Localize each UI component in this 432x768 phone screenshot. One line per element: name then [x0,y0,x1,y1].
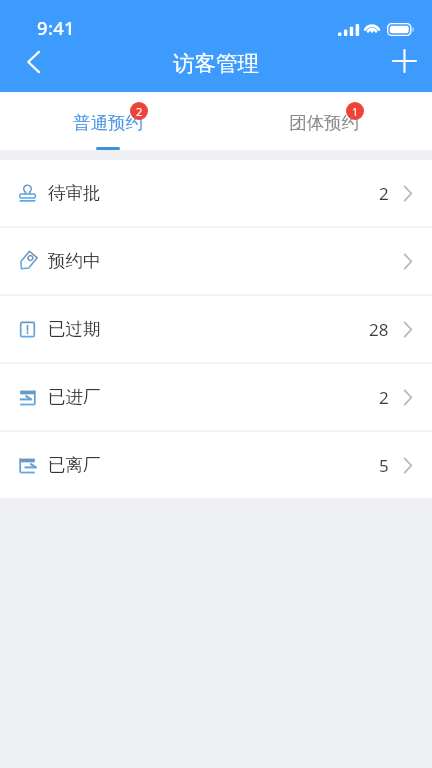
button[interactable]: 普通预约 [0,92,216,150]
staticText: 2 [379,182,389,205]
staticText: 1 [352,104,359,119]
button[interactable]: 已过期 [0,296,432,362]
staticText: 普通预约 [73,112,143,134]
staticText: 已过期 [48,318,101,340]
staticText: 已离厂 [48,454,101,476]
staticText: 预约中 [48,250,101,272]
button[interactable]: 待审批 [0,160,432,226]
button[interactable]: Back [9,38,57,86]
staticText: 已进厂 [48,386,101,408]
staticText: 2 [136,104,143,119]
staticText: 访客管理 [173,50,259,77]
button[interactable]: 团体预约 [216,92,432,150]
button[interactable]: 已离厂 [0,432,432,498]
staticText: 28 [369,318,389,341]
staticText: 2 [379,386,389,409]
staticText: 5 [379,454,389,477]
button[interactable]: Add [380,37,428,85]
staticText: 待审批 [48,182,101,204]
button[interactable]: 预约中 [0,228,432,294]
button[interactable]: 已进厂 [0,364,432,430]
staticText: 团体预约 [289,112,359,134]
staticText: 9:41 [37,15,75,40]
